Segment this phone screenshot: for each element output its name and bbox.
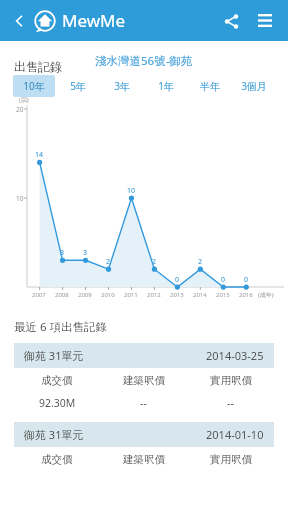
staticText: 2 — [106, 257, 111, 267]
staticText: 半年 — [200, 80, 220, 93]
staticText: 92.30M — [39, 396, 76, 410]
staticText: 3年 — [114, 79, 130, 93]
staticText: 0 — [221, 275, 226, 285]
staticText: 御苑 31單元 — [24, 427, 84, 442]
staticText: 出售記錄 — [14, 59, 62, 74]
staticText: 2 — [198, 257, 203, 267]
staticText: 2014 — [193, 291, 207, 299]
staticText: 1年 — [158, 79, 174, 93]
staticText: 20 — [16, 105, 24, 114]
button[interactable]: 3個月 — [233, 75, 275, 97]
staticText: (成年) — [258, 291, 274, 299]
button[interactable]: Menu — [250, 6, 280, 36]
button[interactable]: 3年 — [101, 75, 143, 97]
staticText: 2008 — [55, 291, 69, 299]
staticText: -- — [140, 396, 147, 410]
staticText: 2007 — [32, 291, 46, 299]
staticText: 實用呎價 — [210, 453, 252, 466]
staticText: 2009 — [78, 291, 92, 299]
staticText: 2012 — [147, 291, 161, 299]
button[interactable]: 1年 — [145, 75, 187, 97]
staticText: 3 — [60, 248, 65, 258]
staticText: 最近 6 項出售記錄 — [14, 319, 108, 335]
staticText: 2013 — [170, 291, 184, 299]
staticText: 2 — [152, 257, 157, 267]
staticText: 2015 — [216, 291, 230, 299]
staticText: MewMe — [62, 9, 126, 32]
staticText: 2016 — [239, 291, 253, 299]
button[interactable]: Back — [6, 8, 32, 34]
staticText: 10 — [16, 194, 24, 203]
staticText: 5年 — [70, 79, 86, 93]
staticText: 14 — [35, 150, 44, 160]
button[interactable]: 半年 — [189, 75, 231, 97]
button[interactable]: 御苑 31單元 — [14, 422, 274, 447]
staticText: 成交價 — [41, 374, 73, 387]
staticText: 實用呎價 — [210, 374, 252, 387]
button[interactable]: 10年 — [13, 75, 55, 97]
button[interactable]: 5年 — [57, 75, 99, 97]
staticText: 御苑 31單元 — [24, 348, 84, 363]
staticText: 10 — [127, 186, 136, 196]
staticText: -- — [227, 396, 234, 410]
staticText: 0 — [244, 275, 249, 285]
staticText: 建築呎價 — [123, 453, 165, 466]
staticText: 3 — [83, 248, 88, 258]
staticText: 0 — [175, 275, 180, 285]
staticText: 2011 — [124, 291, 138, 299]
button[interactable]: 御苑 31單元 — [14, 343, 274, 368]
staticText: (宗) — [19, 96, 29, 104]
staticText: 2014-03-25 — [206, 348, 264, 363]
staticText: 淺水灣道56號-御苑 — [95, 53, 193, 69]
staticText: 2010 — [101, 291, 115, 299]
staticText: 3個月 — [241, 79, 267, 93]
staticText: 10年 — [23, 79, 45, 93]
staticText: 成交價 — [41, 453, 73, 466]
staticText: 2014-01-10 — [206, 427, 264, 442]
button[interactable]: Share — [216, 6, 246, 36]
staticText: 建築呎價 — [123, 374, 165, 387]
